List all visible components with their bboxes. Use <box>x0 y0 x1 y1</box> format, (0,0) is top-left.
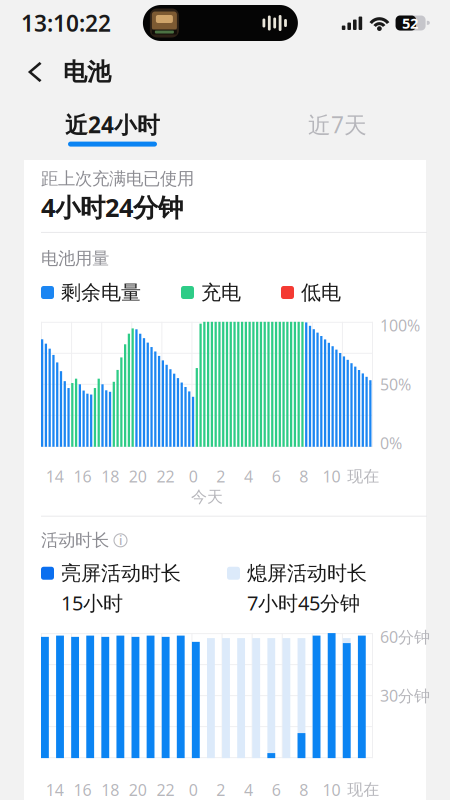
staticText: 0% <box>380 432 402 454</box>
staticText: 22 <box>156 779 174 800</box>
staticText: 电池用量 <box>41 248 109 269</box>
staticText: 电池 <box>63 57 111 87</box>
staticText: 剩余电量 <box>61 280 141 305</box>
staticText: 16 <box>73 779 91 800</box>
staticText: i <box>119 532 122 548</box>
staticText: 2 <box>216 779 225 800</box>
staticText: 6 <box>272 779 281 800</box>
staticText: 8 <box>299 466 308 487</box>
staticText: 18 <box>101 466 119 487</box>
staticText: 低电 <box>301 280 341 305</box>
staticText: 20 <box>129 779 147 800</box>
staticText: 6 <box>272 466 281 487</box>
staticText: 50% <box>380 374 411 395</box>
staticText: 0 <box>189 466 198 487</box>
staticText: 7小时45分钟 <box>247 589 360 616</box>
staticText: 现在 <box>347 467 379 486</box>
staticText: 今天 <box>191 487 223 507</box>
staticText: 10 <box>322 466 340 487</box>
staticText: 4 <box>244 779 253 800</box>
staticText: 20 <box>129 466 147 487</box>
staticText: 距上次充满电已使用 <box>41 168 194 189</box>
staticText: 充电 <box>201 280 241 305</box>
staticText: 熄屏活动时长 <box>247 561 367 586</box>
staticText: 4 <box>244 466 253 487</box>
staticText: 13:10:22 <box>21 8 111 38</box>
button[interactable]: 返回 <box>0 46 63 98</box>
staticText: 4小时24分钟 <box>41 190 183 224</box>
staticText: 22 <box>156 466 174 487</box>
button[interactable]: 近24小时 <box>0 86 225 171</box>
staticText: 活动时长 <box>41 530 109 551</box>
staticText: 现在 <box>347 780 379 800</box>
staticText: 2 <box>216 466 225 487</box>
staticText: 近24小时 <box>65 109 160 140</box>
staticText: 8 <box>299 779 308 800</box>
staticText: 18 <box>101 779 119 800</box>
staticText: 亮屏活动时长 <box>61 561 181 586</box>
staticText: 15小时 <box>61 589 123 616</box>
staticText: 0 <box>189 779 198 800</box>
staticText: 60分钟 <box>380 626 430 647</box>
staticText: 52 <box>402 13 418 33</box>
staticText: 30分钟 <box>380 685 430 706</box>
button[interactable]: 近7天 <box>225 86 450 171</box>
staticText: 14 <box>46 466 64 487</box>
staticText: 14 <box>46 779 64 800</box>
staticText: 10 <box>322 779 340 800</box>
staticText: 近7天 <box>308 109 367 140</box>
staticText: 16 <box>73 466 91 487</box>
staticText: 100% <box>380 315 420 336</box>
